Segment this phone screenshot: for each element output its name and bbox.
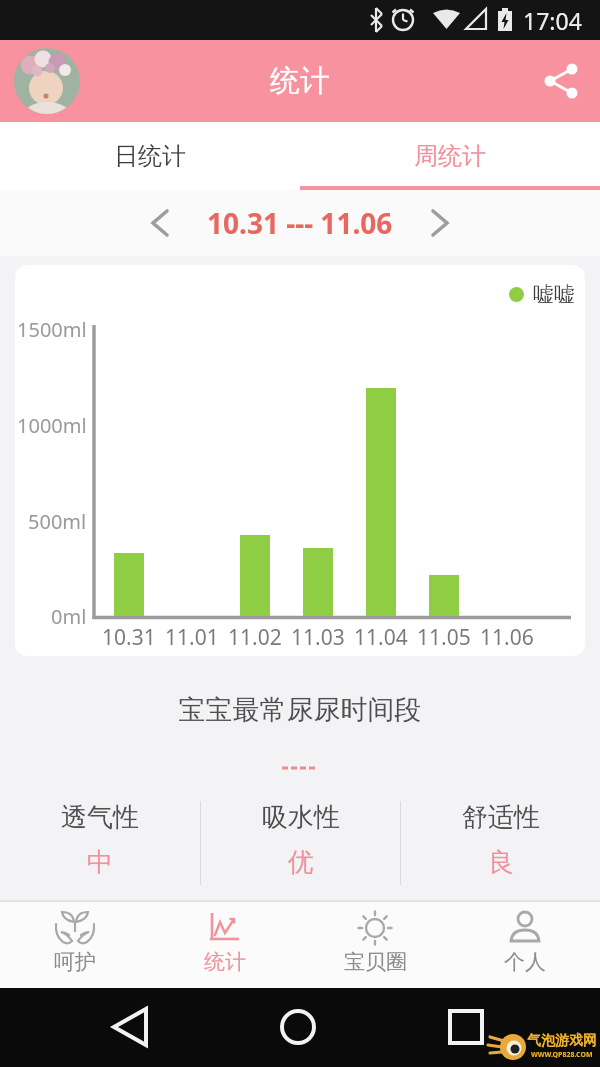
button[interactable]: 个人 (450, 902, 600, 988)
staticText: 透气性 (61, 801, 139, 834)
staticText: 10.31 (102, 623, 156, 652)
staticText: 11.03 (291, 623, 345, 652)
button[interactable]: 宝贝圈 (300, 902, 450, 988)
staticText: 气泡游戏网 (527, 1032, 597, 1050)
staticText: 11.01 (165, 623, 219, 652)
staticText: 中 (87, 846, 113, 879)
button[interactable] (540, 58, 586, 104)
button[interactable]: 透气性 (0, 801, 200, 891)
staticText: 周统计 (414, 141, 486, 171)
button[interactable]: 周统计 (300, 122, 600, 190)
button[interactable]: 统计 (150, 902, 300, 988)
staticText: WWW.QP828.COM (531, 1050, 593, 1060)
staticText: 日统计 (114, 141, 186, 171)
staticText: 11.02 (228, 623, 282, 652)
button[interactable]: 日统计 (0, 122, 300, 190)
staticText: 舒适性 (462, 801, 540, 834)
staticText: 11.06 (480, 623, 534, 652)
staticText: 个人 (504, 949, 546, 975)
staticText: 10.31 --- 11.06 (207, 204, 393, 242)
button[interactable]: 呵护 (0, 902, 150, 988)
staticText: 500ml (28, 508, 87, 535)
staticText: 宝宝最常尿尿时间段 (0, 693, 600, 727)
staticText: 嘘嘘 (533, 281, 575, 307)
button[interactable] (145, 203, 175, 243)
staticText: 吸水性 (262, 801, 340, 834)
staticText: 良 (488, 846, 514, 879)
staticText: 优 (288, 846, 314, 879)
staticText: 11.04 (354, 623, 408, 652)
button[interactable]: 舒适性 (401, 801, 600, 891)
staticText: 1000ml (17, 412, 87, 439)
button[interactable] (425, 203, 455, 243)
staticText: 17:04 (523, 5, 582, 36)
staticText: 呵护 (54, 949, 96, 975)
staticText: 统计 (204, 949, 246, 975)
staticText: 0ml (51, 603, 87, 630)
button[interactable]: 吸水性 (201, 801, 400, 891)
staticText: 宝贝圈 (344, 949, 407, 975)
staticText: 1500ml (17, 316, 87, 343)
button[interactable] (14, 48, 80, 114)
staticText: 11.05 (417, 623, 471, 652)
staticText: 统计 (270, 62, 330, 100)
